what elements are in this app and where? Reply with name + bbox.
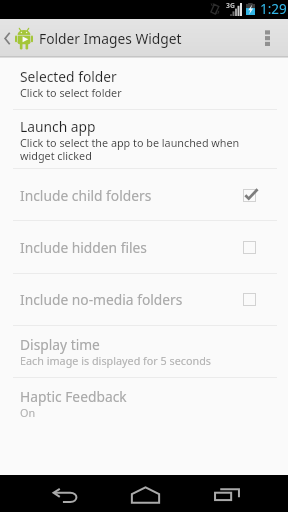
staticText: Include child folders — [20, 186, 243, 205]
button[interactable]: Launch app — [0, 110, 288, 168]
button[interactable]: Display time — [0, 326, 288, 377]
button[interactable]: Haptic Feedback — [0, 378, 288, 430]
staticText: Folder Images Widget — [39, 29, 182, 48]
staticText: Include hidden files — [20, 238, 243, 257]
staticText: Haptic Feedback — [20, 387, 127, 406]
button[interactable]: Home — [113, 475, 178, 512]
staticText: Display time — [20, 335, 100, 354]
staticText: 3G — [226, 1, 235, 10]
staticText: On — [20, 405, 36, 420]
staticText: Each image is displayed for 5 seconds — [20, 353, 212, 368]
button[interactable]: Include child folders — [0, 169, 288, 220]
staticText: Launch app — [20, 117, 96, 136]
staticText: Click to select the app to be launched w… — [20, 135, 240, 163]
button[interactable]: Back — [32, 475, 97, 512]
button[interactable]: More options — [247, 19, 288, 56]
button[interactable]: Navigate up — [0, 25, 35, 51]
staticText: Include no-media folders — [20, 290, 243, 309]
button[interactable]: Include no-media folders — [0, 274, 288, 325]
button[interactable]: Recent apps — [194, 475, 259, 512]
staticText: 1:29 — [260, 0, 287, 18]
staticText: Selected folder — [20, 67, 117, 86]
button[interactable]: Include hidden files — [0, 221, 288, 273]
staticText: Click to select folder — [20, 85, 122, 100]
button[interactable]: Selected folder — [0, 58, 288, 109]
